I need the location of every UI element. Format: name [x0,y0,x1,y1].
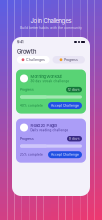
button[interactable]: Accept Challenge [48,102,82,109]
staticText: Progress [20,137,34,141]
staticText: Growth [17,48,36,55]
staticText: Progress [20,88,34,92]
staticText: Daily reading challenge [30,128,68,132]
staticText: 12 days [68,88,80,91]
staticText: 30 day streak challenge [30,79,69,83]
button[interactable]: Accept Challenge [48,151,82,158]
staticText: Build better habits with the community [20,26,82,30]
staticText: 8 days [69,137,80,140]
staticText: Join Challenges [30,17,71,24]
button[interactable]: Challenges [17,56,49,63]
staticText: Morning Workout [30,74,61,79]
staticText: 40% complete [20,104,43,107]
staticText: Accept Challenge [51,153,79,157]
button[interactable]: Progress [52,56,85,63]
staticText: 9:41 [17,40,24,44]
staticText: 25% complete [20,153,43,156]
staticText: Challenges [26,58,45,62]
staticText: Accept Challenge [51,104,79,108]
staticText: Progress [64,58,78,62]
staticText: Read 20 Pages [30,123,57,128]
